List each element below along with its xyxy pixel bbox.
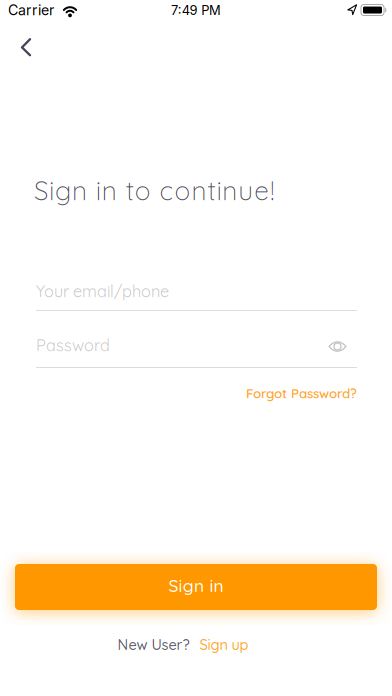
staticText: Password (36, 335, 110, 355)
button[interactable]: Back (4, 25, 48, 69)
staticText: Your email/phone (36, 281, 169, 301)
staticText: 7:49 PM (171, 2, 221, 18)
staticText: Carrier (8, 2, 54, 19)
button[interactable]: Sign in (15, 564, 377, 610)
button[interactable]: Show password (322, 334, 352, 358)
staticText: Sign in (168, 575, 224, 596)
staticText: Sign up (199, 635, 248, 654)
button[interactable]: Sign up (199, 635, 248, 654)
button[interactable]: Forgot Password? (246, 385, 357, 402)
staticText: Sign in to continue! (34, 174, 274, 207)
staticText: New User? (117, 635, 189, 654)
staticText: Forgot Password? (246, 385, 357, 402)
